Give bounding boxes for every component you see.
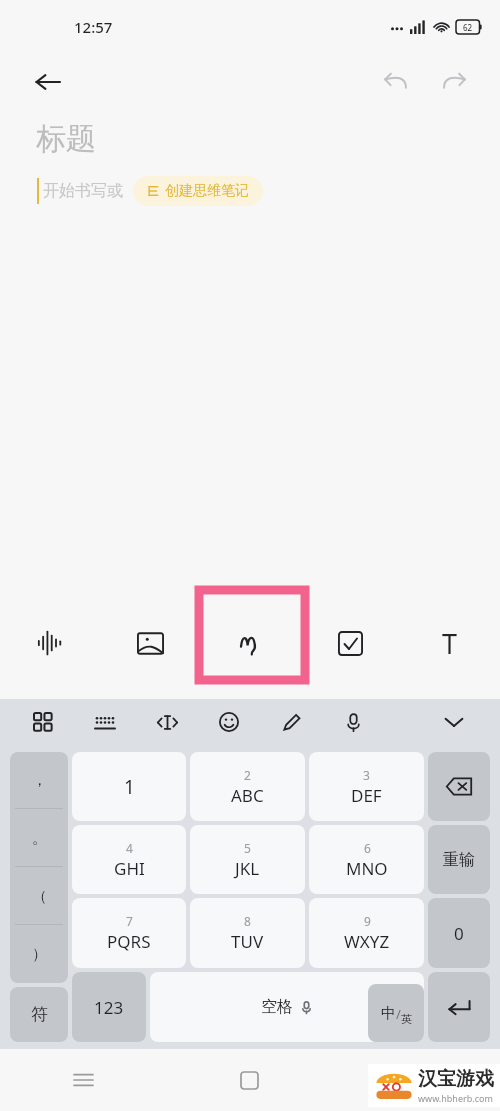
button[interactable]: Backspace: [428, 752, 490, 821]
staticText: DEF: [351, 784, 382, 807]
button[interactable]: 2: [190, 752, 305, 821]
staticText: T: [442, 625, 458, 662]
staticText: PQRS: [107, 930, 151, 953]
staticText: 123: [94, 996, 124, 1019]
button[interactable]: Voice note: [0, 587, 100, 699]
staticText: 2: [244, 767, 251, 783]
button[interactable]: 7: [72, 898, 186, 968]
button[interactable]: Keyboard settings: [88, 705, 122, 739]
button[interactable]: Hide keyboard: [434, 702, 474, 742]
staticText: JKL: [235, 857, 260, 880]
staticText: TUV: [231, 930, 264, 953]
staticText: MNO: [346, 857, 388, 880]
staticText: 9: [364, 913, 371, 929]
button[interactable]: 。: [10, 809, 68, 867]
button[interactable]: 123: [72, 972, 146, 1042]
staticText: 5: [244, 840, 251, 856]
button[interactable]: Enter: [428, 972, 490, 1042]
button[interactable]: Recents: [0, 1049, 166, 1111]
staticText: GHI: [114, 857, 145, 880]
button[interactable]: Text style: [400, 587, 500, 699]
staticText: 标题: [36, 120, 96, 158]
button[interactable]: 重输: [428, 825, 490, 894]
staticText: WXYZ: [344, 930, 390, 953]
button[interactable]: Move cursor: [150, 705, 184, 739]
button[interactable]: （: [10, 867, 68, 925]
staticText: /: [396, 1005, 401, 1023]
button[interactable]: Back: [333, 1049, 500, 1111]
staticText: 6: [364, 840, 371, 856]
staticText: 8: [244, 913, 251, 929]
staticText: 汉宝游戏: [418, 1067, 494, 1091]
button[interactable]: Back: [26, 60, 70, 104]
staticText: 开始书写或: [43, 181, 123, 201]
button[interactable]: 4: [72, 825, 186, 894]
staticText: ，: [32, 771, 47, 790]
staticText: 1: [124, 774, 135, 800]
button[interactable]: Undo: [372, 59, 418, 105]
staticText: 12:57: [74, 17, 113, 37]
staticText: 中: [381, 1004, 396, 1023]
button[interactable]: Redo: [432, 59, 478, 105]
button[interactable]: 中: [368, 984, 424, 1042]
staticText: 重输: [443, 850, 475, 870]
button[interactable]: Emoji: [212, 705, 246, 739]
staticText: 英: [401, 1012, 412, 1026]
button[interactable]: ）: [10, 925, 68, 983]
staticText: 3: [363, 767, 370, 783]
staticText: 62: [463, 22, 473, 33]
staticText: 7: [126, 913, 133, 929]
button[interactable]: Voice input: [336, 705, 370, 739]
button[interactable]: Insert image: [100, 587, 200, 699]
button[interactable]: 空格: [150, 972, 424, 1042]
staticText: 创建思维笔记: [165, 182, 249, 200]
button[interactable]: 8: [190, 898, 305, 968]
button[interactable]: Handwriting: [200, 587, 300, 699]
staticText: 符: [31, 1004, 48, 1025]
button[interactable]: Home: [166, 1049, 333, 1111]
button[interactable]: Checklist: [300, 587, 400, 699]
staticText: 4: [126, 840, 133, 856]
staticText: www.hbherb.com: [418, 1092, 493, 1104]
staticText: 0: [454, 922, 464, 945]
button[interactable]: 3: [309, 752, 424, 821]
staticText: （: [32, 887, 47, 906]
button[interactable]: Handwriting input: [274, 705, 308, 739]
staticText: 。: [32, 829, 47, 848]
button[interactable]: ，: [10, 752, 68, 809]
staticText: ABC: [231, 784, 264, 807]
button[interactable]: 9: [309, 898, 424, 968]
button[interactable]: Keyboard layouts: [26, 705, 60, 739]
button[interactable]: 创建思维笔记: [133, 176, 263, 206]
button[interactable]: 符: [10, 987, 68, 1042]
button[interactable]: 6: [309, 825, 424, 894]
button[interactable]: 5: [190, 825, 305, 894]
staticText: 空格: [261, 997, 293, 1017]
staticText: ）: [32, 945, 47, 964]
button[interactable]: 0: [428, 898, 490, 968]
button[interactable]: 1: [72, 752, 186, 821]
